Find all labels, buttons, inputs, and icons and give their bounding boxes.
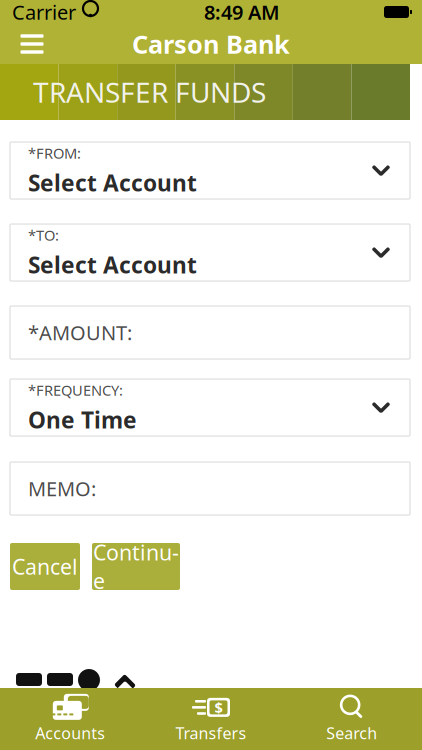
staticText: MEMO: <box>28 475 96 502</box>
staticText: Continue <box>93 538 179 595</box>
staticText: Search <box>326 722 377 744</box>
staticText: Select Account <box>28 168 197 198</box>
staticText: Transfers <box>175 722 246 744</box>
button[interactable]: *FREQUENCY: <box>10 379 410 436</box>
staticText: $ <box>214 698 222 717</box>
button[interactable]: Accounts <box>0 694 141 744</box>
staticText: *FROM: <box>28 143 81 163</box>
staticText: Carson Bank <box>132 27 290 61</box>
button[interactable]: *FROM: <box>10 142 410 199</box>
staticText: *AMOUNT: <box>28 319 132 346</box>
staticText: Carrier <box>12 0 76 25</box>
staticText: 8:49 AM <box>204 0 280 25</box>
button[interactable]: Search <box>281 694 422 744</box>
staticText: Cancel <box>12 552 78 581</box>
button[interactable]: Cancel <box>10 543 80 590</box>
button[interactable]: Menu <box>10 22 54 66</box>
button[interactable]: $ <box>141 694 281 744</box>
button[interactable]: MEMO: <box>10 462 410 515</box>
staticText: Accounts <box>35 722 105 744</box>
staticText: *TO: <box>28 225 59 245</box>
staticText: One Time <box>28 405 137 435</box>
staticText: *FREQUENCY: <box>28 380 123 400</box>
staticText: Select Account <box>28 250 197 280</box>
button[interactable]: *TO: <box>10 224 410 281</box>
staticText: TRANSFER FUNDS <box>33 73 266 111</box>
button[interactable]: Continue <box>92 543 180 590</box>
button[interactable]: *AMOUNT: <box>10 306 410 359</box>
